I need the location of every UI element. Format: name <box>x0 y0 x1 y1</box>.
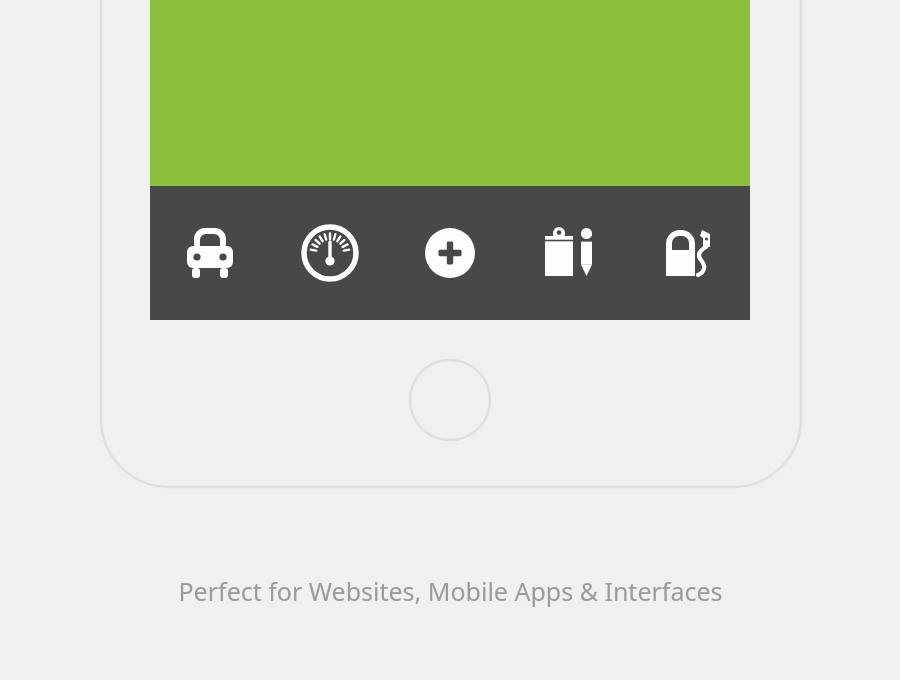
button[interactable]: Fuel <box>630 186 750 320</box>
button[interactable]: Notes <box>510 186 630 320</box>
button[interactable]: Car <box>150 186 270 320</box>
button[interactable]: Add new <box>390 186 510 320</box>
staticText: Perfect for Websites, Mobile Apps & Inte… <box>178 574 723 608</box>
button[interactable]: Dashboard <box>270 186 390 320</box>
